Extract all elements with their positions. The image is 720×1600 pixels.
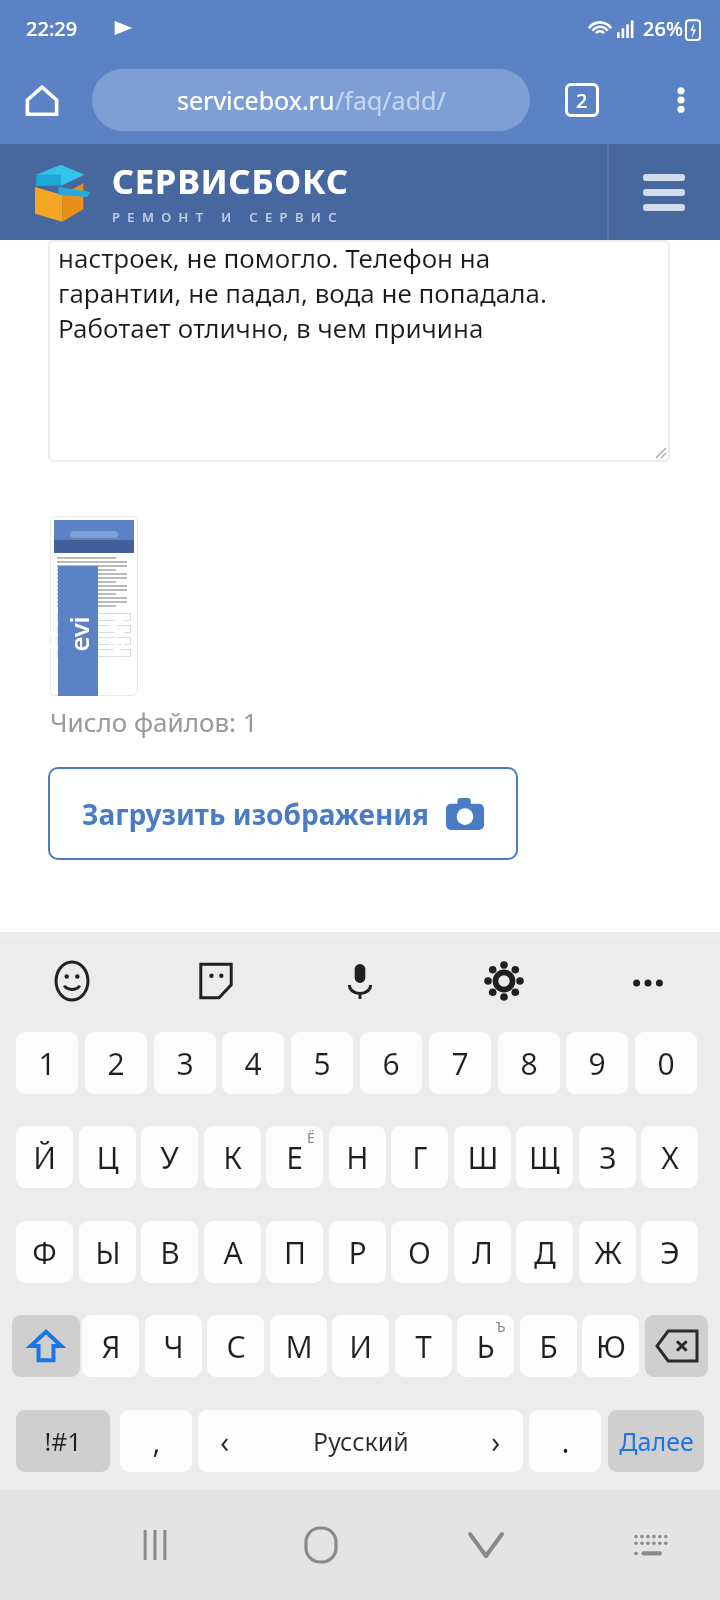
button[interactable]: 1 [16,1032,78,1094]
button[interactable]: 5 [291,1032,353,1094]
staticText: Д [534,1232,556,1273]
staticText: 0 [657,1043,675,1084]
button[interactable]: В [141,1221,198,1283]
staticText: 1 [38,1043,56,1084]
button[interactable]: Я [82,1315,139,1377]
staticText: настроек, не помогло. Телефон на [58,240,491,275]
button[interactable]: More [576,938,720,1024]
button[interactable]: К [204,1126,261,1188]
button[interactable]: Г [391,1126,448,1188]
button[interactable]: , [120,1410,192,1472]
staticText: гарантии, не падал, вода не попадала. [58,275,547,310]
button[interactable]: 3 [154,1032,216,1094]
button[interactable]: Н [329,1126,386,1188]
button[interactable]: !#1 [16,1410,110,1472]
button[interactable]: Ц [79,1126,136,1188]
button[interactable]: Hide keyboard [441,1500,531,1590]
staticText: Ф [32,1232,57,1273]
staticText: /faq/add/ [335,83,446,117]
button[interactable]: Ж [579,1221,636,1283]
button[interactable]: Voice input [288,938,432,1024]
button[interactable]: Ф [16,1221,73,1283]
staticText: Ю [596,1326,626,1367]
button[interactable]: И [332,1315,389,1377]
button[interactable]: More options [652,71,710,129]
staticText: Н [346,1137,369,1178]
staticText: Загрузить изображения [82,795,430,833]
button[interactable]: Русский [198,1410,523,1472]
button[interactable]: Home [276,1500,366,1590]
button[interactable]: Emoji [0,938,144,1024]
staticText: 3 [176,1043,194,1084]
button[interactable]: 8 [498,1032,560,1094]
button[interactable]: Загрузить изображения [48,767,518,860]
button[interactable]: Х [641,1126,698,1188]
staticText: 2 [107,1043,125,1084]
button[interactable]: Ю [582,1315,639,1377]
button[interactable]: З [579,1126,636,1188]
staticText: Т [415,1326,432,1367]
button[interactable]: Menu [629,157,699,227]
button[interactable]: Р [329,1221,386,1283]
button[interactable]: servicebox.ru [92,69,530,131]
button[interactable]: М [270,1315,327,1377]
button[interactable]: 9 [566,1032,628,1094]
button[interactable]: А [204,1221,261,1283]
button[interactable]: Л [454,1221,511,1283]
staticText: 5 [313,1043,331,1084]
staticText: Ж [594,1232,622,1273]
button[interactable]: Backspace [645,1315,708,1377]
staticText: Б [539,1326,558,1367]
button[interactable]: 2 [85,1032,147,1094]
button[interactable]: Ь [457,1315,514,1377]
button[interactable]: Щ [516,1126,573,1188]
staticText: 6 [382,1043,400,1084]
button[interactable]: Й [16,1126,73,1188]
staticText: Далее [619,1424,694,1458]
button[interactable]: Т [395,1315,452,1377]
staticText: , [152,1421,161,1462]
staticText: Р [348,1232,367,1273]
staticText: Э [660,1232,680,1273]
staticText: СЕРВИСБОКС [112,158,349,204]
button[interactable]: 7 [429,1032,491,1094]
button[interactable]: Recents [110,1500,200,1590]
button[interactable]: 0 [635,1032,697,1094]
button[interactable]: Stickers [144,938,288,1024]
button[interactable]: Keyboard layout [606,1500,696,1590]
button[interactable]: Ч [145,1315,202,1377]
button[interactable]: 6 [360,1032,422,1094]
button[interactable]: С [207,1315,264,1377]
button[interactable]: П [266,1221,323,1283]
staticText: Е [286,1137,303,1178]
staticText: !#1 [44,1424,82,1458]
button[interactable]: Далее [608,1410,704,1472]
button[interactable]: Б [520,1315,577,1377]
staticText: › [491,1421,501,1462]
staticText: Щ [529,1137,560,1178]
staticText: 7 [451,1043,469,1084]
button[interactable]: Home [14,72,70,128]
button[interactable]: 4 [222,1032,284,1094]
button[interactable]: . [529,1410,601,1472]
staticText: У [160,1137,179,1178]
button[interactable]: настроек, не помогло. Телефон на [48,240,670,462]
staticText: М [285,1326,313,1367]
button[interactable]: Ш [454,1126,511,1188]
button[interactable]: Shift [12,1315,80,1377]
staticText: О [408,1232,431,1273]
staticText: 8 [520,1043,538,1084]
button[interactable]: О [391,1221,448,1283]
button[interactable]: Settings [432,938,576,1024]
button[interactable]: У [141,1126,198,1188]
button[interactable]: Э [641,1221,698,1283]
button[interactable]: Е [266,1126,323,1188]
button[interactable]: Ы [79,1221,136,1283]
staticText: 26% [643,15,683,42]
staticText: Й [33,1137,56,1178]
staticText: З [599,1137,617,1178]
staticText: 22:29 [26,15,78,42]
staticText: Работает отлично, в чем причина [58,310,484,345]
button[interactable]: Д [516,1221,573,1283]
button[interactable]: Tabs [552,70,612,130]
